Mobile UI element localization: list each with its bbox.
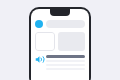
button[interactable] [46,20,85,28]
button[interactable]: Profile avatar [35,20,43,28]
button[interactable]: Sound [35,55,44,64]
button[interactable] [46,55,85,58]
button[interactable]: Profile avatar [29,7,91,80]
button[interactable] [35,32,55,51]
